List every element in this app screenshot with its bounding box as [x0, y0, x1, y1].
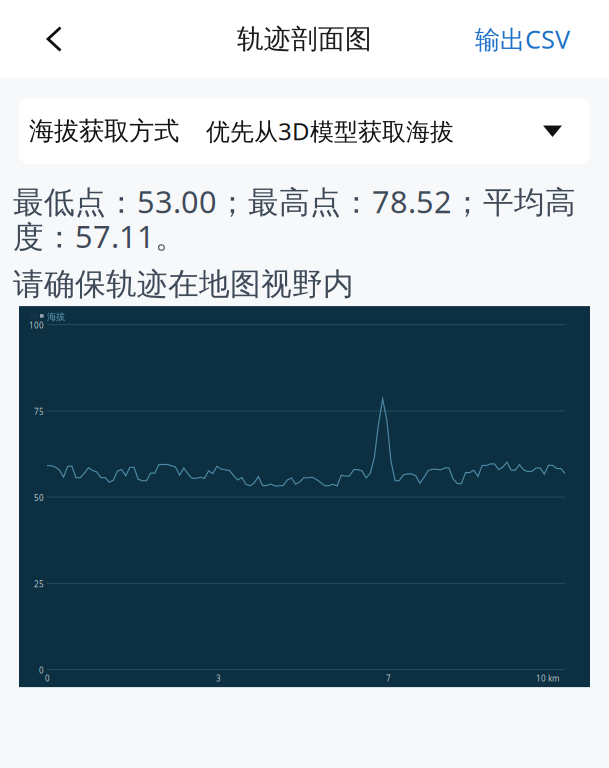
staticText: 25 [34, 579, 44, 589]
staticText: 100 [29, 320, 44, 331]
staticText: 0 [39, 665, 44, 676]
staticText: 轨迹剖面图 [237, 23, 372, 55]
staticText: 海拔获取方式 [29, 115, 179, 146]
button[interactable]: 输出CSV [457, 3, 609, 75]
staticText: 50 [34, 493, 44, 503]
staticText: 75 [34, 406, 44, 417]
staticText: 输出CSV [475, 22, 570, 56]
button[interactable]: 返回 [0, 6, 88, 71]
staticText: 0 [45, 673, 50, 684]
staticText: 优先从3D模型获取海拔 [206, 115, 454, 147]
staticText: 3 [216, 673, 221, 684]
staticText: 最低点：53.00；最高点：78.52；平均高度：57.11。 [13, 181, 576, 256]
staticText: 请确保轨迹在地图视野内 [13, 265, 354, 303]
staticText: m [30, 311, 37, 322]
button[interactable]: 海拔获取方式 [19, 98, 590, 164]
staticText: 10 km [536, 673, 559, 684]
staticText: 7 [386, 673, 391, 684]
staticText: 海拔 [47, 311, 65, 323]
